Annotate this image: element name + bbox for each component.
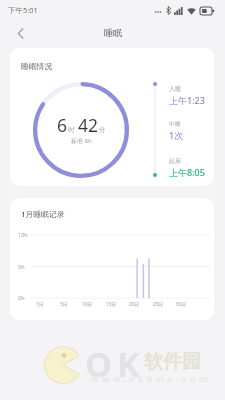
staticText: www.okemu.com <box>91 372 211 384</box>
button[interactable]: Back <box>10 23 30 43</box>
staticText: 下午5:01 <box>8 5 38 15</box>
staticText: 10日 <box>78 301 96 308</box>
staticText: 5h <box>18 263 25 270</box>
staticText: 入睡 <box>169 85 181 93</box>
staticText: 6 <box>57 113 68 137</box>
staticText: 软件园 <box>144 350 201 374</box>
staticText: 15日 <box>102 301 120 308</box>
staticText: 分 <box>99 126 106 134</box>
staticText: 42 <box>78 113 99 137</box>
staticText: 20日 <box>125 301 143 308</box>
staticText: 25日 <box>149 301 167 308</box>
staticText: 中断 <box>169 120 181 128</box>
staticText: 30日 <box>172 301 190 308</box>
staticText: 标准 8h <box>71 137 92 145</box>
staticText: 10h <box>18 231 28 238</box>
staticText: 睡眠情况 <box>21 61 53 71</box>
staticText: 睡眠 <box>104 27 122 38</box>
staticText: 上午8:05 <box>169 166 205 178</box>
staticText: 1日 <box>31 301 49 308</box>
staticText: 上午1:23 <box>169 94 205 106</box>
staticText: 1次 <box>169 129 184 141</box>
staticText: 时 <box>68 126 75 134</box>
staticText: OK <box>85 341 145 387</box>
staticText: 起床 <box>169 157 181 165</box>
staticText: 1月睡眠记录 <box>21 209 65 220</box>
staticText: 0h <box>18 294 25 301</box>
staticText: 5日 <box>55 301 73 308</box>
